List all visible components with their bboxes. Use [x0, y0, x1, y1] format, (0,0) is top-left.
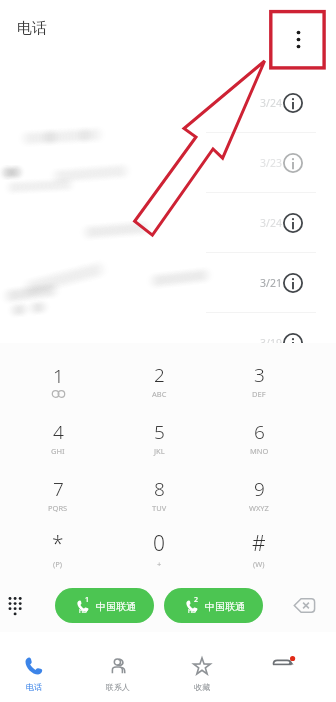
staticText: HD — [188, 607, 197, 614]
staticText: 2 — [154, 362, 165, 388]
staticText: WXYZ — [249, 503, 269, 513]
staticText: * — [52, 529, 64, 558]
button[interactable]: Delete — [288, 588, 321, 622]
staticText: 9 — [254, 476, 265, 502]
button[interactable]: 2 — [164, 588, 263, 623]
staticText: 1 — [85, 595, 90, 605]
button[interactable]: More — [255, 651, 303, 691]
staticText: 3/24 — [260, 96, 282, 110]
staticText: 中国联通 — [96, 600, 136, 613]
staticText: HD — [79, 607, 88, 614]
button[interactable]: 3/21 — [0, 253, 336, 313]
button[interactable]: 1 — [18, 356, 98, 404]
button[interactable]: 9 — [219, 470, 299, 518]
staticText: 2 — [194, 595, 199, 605]
button[interactable]: * — [18, 525, 98, 573]
button[interactable]: Call details — [282, 332, 304, 354]
staticText: ABC — [152, 389, 167, 399]
button[interactable]: 3/19 — [0, 313, 336, 373]
button[interactable]: 7 — [18, 470, 98, 518]
staticText: 中国联通 — [205, 600, 245, 613]
button[interactable]: 0 — [119, 525, 199, 573]
staticText: 3/24 — [260, 216, 282, 230]
staticText: GHI — [51, 446, 65, 456]
button[interactable]: # — [219, 525, 299, 573]
button[interactable]: 5 — [119, 413, 199, 461]
staticText: TUV — [152, 503, 167, 513]
staticText: 4 — [53, 419, 64, 445]
staticText: 3/19 — [260, 336, 282, 350]
staticText: 5 — [154, 419, 165, 445]
button[interactable]: 电话 — [3, 646, 65, 698]
button[interactable]: Call details — [282, 152, 304, 174]
button[interactable]: Call details — [282, 212, 304, 234]
staticText: DEF — [252, 389, 266, 399]
button[interactable]: 联系人 — [87, 646, 149, 698]
button[interactable]: 6 — [219, 413, 299, 461]
button[interactable]: 8 — [119, 470, 199, 518]
staticText: JKL — [154, 446, 165, 456]
button[interactable]: 4 — [18, 413, 98, 461]
button[interactable]: Call details — [282, 92, 304, 114]
staticText: 3/21 — [260, 276, 282, 290]
staticText: 1 — [53, 363, 64, 389]
button[interactable]: 2 — [119, 356, 199, 404]
staticText: 电话 — [26, 682, 42, 692]
staticText: 8 — [154, 476, 165, 502]
staticText: 收藏 — [194, 682, 210, 692]
staticText: 联系人 — [106, 682, 130, 692]
staticText: 7 — [53, 476, 64, 502]
button[interactable]: More options — [275, 16, 322, 63]
staticText: 0 — [153, 529, 165, 558]
staticText: PQRS — [48, 503, 68, 513]
button[interactable]: 3 — [219, 356, 299, 404]
button[interactable]: 收藏 — [171, 646, 233, 698]
button[interactable]: Keypad — [0, 582, 31, 628]
staticText: 电话 — [17, 19, 47, 38]
button[interactable]: Call details — [282, 272, 304, 294]
staticText: 6 — [254, 419, 265, 445]
staticText: (P) — [53, 559, 63, 569]
staticText: 3 — [254, 362, 265, 388]
staticText: MNO — [250, 446, 269, 456]
staticText: 3/23 — [260, 156, 282, 170]
button[interactable]: 3/24 — [0, 73, 336, 133]
button[interactable]: 3/24 — [0, 193, 336, 253]
staticText: # — [252, 529, 266, 558]
button[interactable]: 1 — [55, 588, 154, 623]
button[interactable]: 3/23 — [0, 133, 336, 193]
staticText: + — [157, 559, 162, 569]
staticText: (W) — [253, 559, 265, 569]
